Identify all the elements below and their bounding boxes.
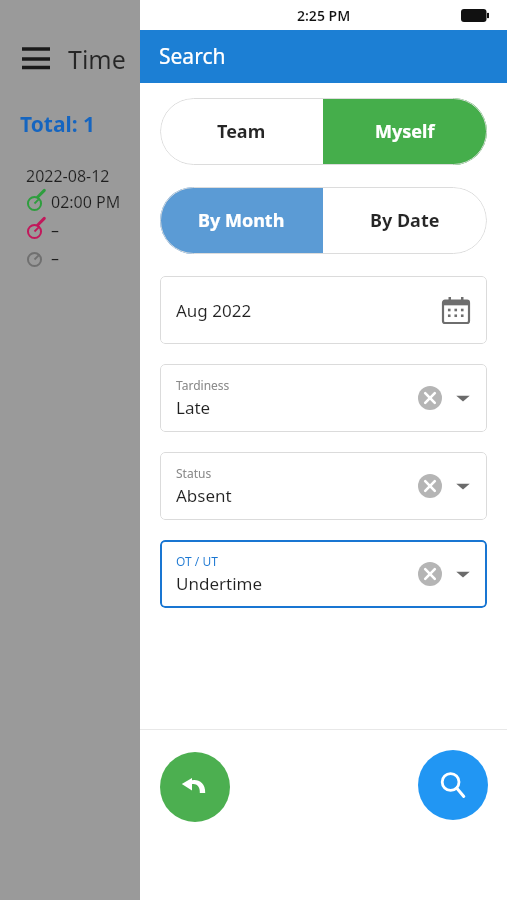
button[interactable]: Open Status (455, 478, 471, 494)
staticText: Time (68, 42, 126, 76)
staticText: By Month (198, 208, 285, 233)
button[interactable]: Clear Status (418, 474, 442, 498)
staticText: – (51, 247, 60, 269)
staticText: Team (217, 119, 266, 144)
button[interactable]: Myself (323, 98, 487, 165)
staticText: Tardiness (176, 377, 230, 393)
staticText: Myself (375, 119, 435, 144)
button[interactable]: Search (418, 750, 488, 820)
button[interactable]: Status (160, 452, 487, 520)
button[interactable]: Search (140, 30, 507, 83)
button[interactable]: Clear Tardiness (418, 386, 442, 410)
other: Pick month (443, 297, 469, 323)
button[interactable]: Tardiness (160, 364, 487, 432)
button[interactable]: By Month (160, 187, 323, 254)
staticText: Search (159, 42, 226, 71)
staticText: 2022-08-12 (26, 165, 110, 187)
staticText: Total: 1 (20, 110, 96, 139)
button[interactable]: By Date (323, 187, 487, 254)
staticText: 02:00 PM (51, 191, 121, 213)
staticText: By Date (370, 208, 440, 233)
staticText: Status (176, 465, 212, 481)
staticText: Late (176, 396, 211, 419)
button[interactable]: Clear OT / UT (418, 562, 442, 586)
button[interactable]: Open OT / UT (455, 566, 471, 582)
staticText: – (51, 219, 60, 241)
button[interactable]: OT / UT (160, 540, 487, 608)
staticText: 2:25 PM (297, 6, 351, 25)
staticText: Aug 2022 (176, 299, 252, 322)
staticText: OT / UT (176, 553, 218, 569)
button[interactable]: Open Tardiness (455, 390, 471, 406)
staticText: Undertime (176, 572, 263, 595)
button[interactable]: Reset (160, 752, 230, 822)
button[interactable]: Team (160, 98, 323, 165)
staticText: Absent (176, 484, 232, 507)
button[interactable]: Aug 2022 (160, 276, 487, 344)
